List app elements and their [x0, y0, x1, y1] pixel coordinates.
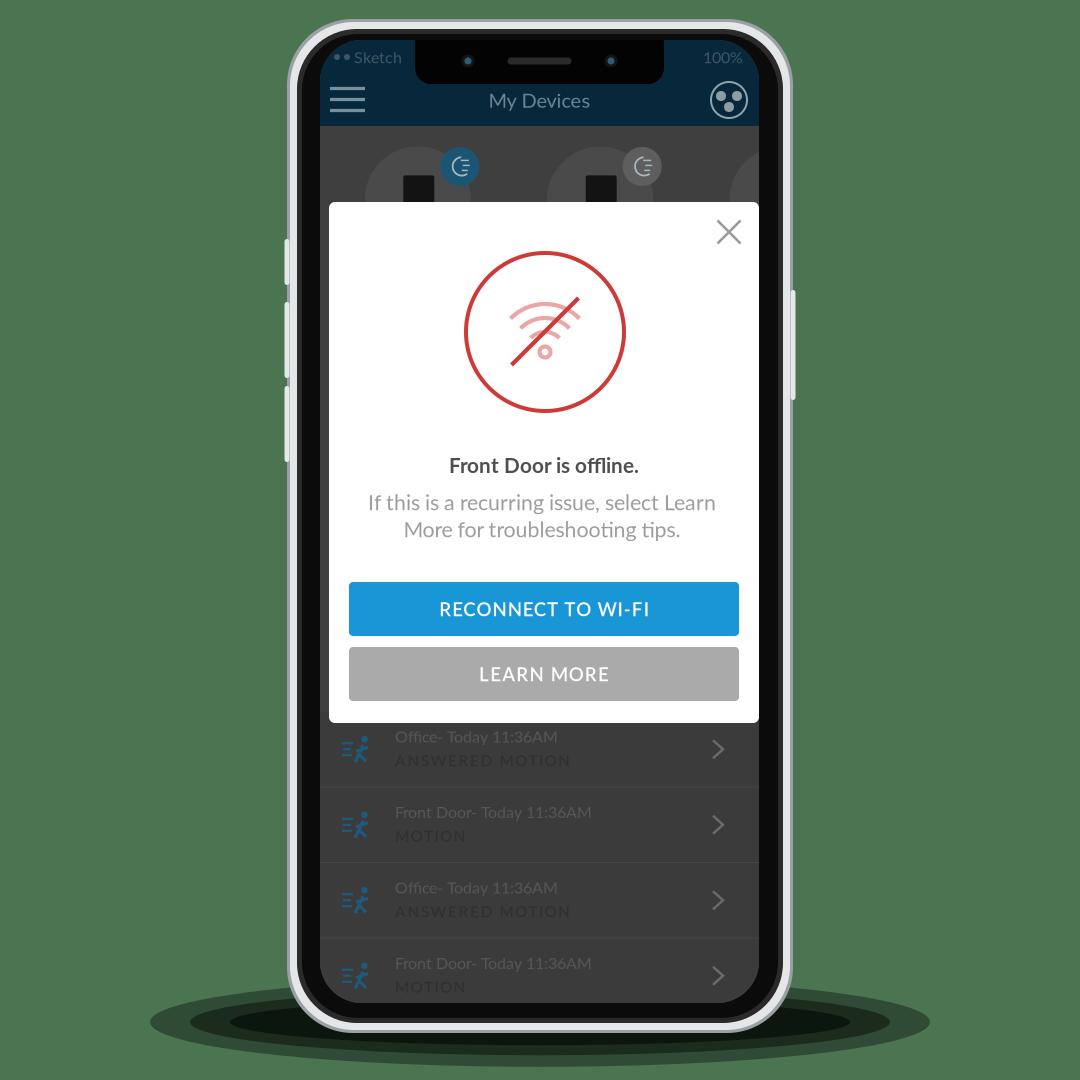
staticText: 100%	[703, 47, 743, 67]
staticText: Office- Today 11:36AM	[395, 727, 558, 746]
staticText: MOTION	[395, 978, 465, 996]
staticText: MOTION	[395, 827, 465, 845]
button[interactable]: Account	[707, 74, 759, 126]
button[interactable]: Office- Today 11:36AM	[320, 863, 759, 937]
staticText: ANSWERED MOTION	[395, 902, 570, 920]
staticText: Office- Today 11:36AM	[395, 878, 558, 897]
staticText: LEARN MORE	[479, 663, 609, 685]
button[interactable]: Front Door- Today 11:36AM	[320, 787, 759, 862]
staticText: RECONNECT TO WI-FI	[439, 598, 649, 620]
button[interactable]: RECONNECT TO WI-FI	[349, 582, 739, 636]
staticText: Front Door- Today 11:36AM	[395, 953, 592, 972]
staticText: Sketch	[354, 47, 402, 67]
staticText: More for troubleshooting tips.	[403, 516, 680, 542]
button[interactable]: Menu	[320, 74, 375, 126]
button[interactable]: Office- Today 11:36AM	[320, 712, 759, 786]
staticText: If this is a recurring issue, select Lea…	[368, 489, 716, 515]
button[interactable]: Close	[700, 203, 758, 261]
button[interactable]: LEARN MORE	[349, 647, 739, 701]
button[interactable]: Front Door- Today 11:36AM	[320, 938, 759, 1013]
staticText: Front Door- Today 11:36AM	[395, 802, 592, 821]
staticText: ANSWERED MOTION	[395, 751, 570, 769]
staticText: My Devices	[488, 88, 590, 112]
staticText: Front Door is offline.	[449, 453, 639, 477]
